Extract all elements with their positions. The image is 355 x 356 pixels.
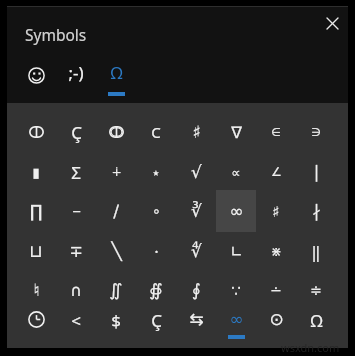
- button[interactable]: Symbol category: [136, 302, 176, 347]
- staticText: Ω: [110, 61, 123, 84]
- button[interactable]: Insert symbol: [176, 151, 216, 193]
- staticText: ▮: [32, 165, 40, 180]
- staticText: Σ: [71, 161, 81, 184]
- button[interactable]: Insert symbol: [56, 190, 96, 232]
- button[interactable]: Insert symbol: [136, 151, 176, 193]
- staticText: ∯: [149, 280, 163, 300]
- staticText: −: [72, 201, 81, 221]
- staticText: ∏: [30, 201, 43, 221]
- button[interactable]: Insert symbol: [256, 190, 296, 232]
- staticText: ⋇: [271, 244, 282, 259]
- staticText: ∞: [229, 309, 244, 329]
- button[interactable]: Recently used: [16, 302, 56, 347]
- staticText: ∝: [231, 165, 241, 180]
- staticText: ♮: [33, 280, 40, 300]
- staticText: ∋: [311, 126, 321, 139]
- staticText: ∮: [192, 280, 201, 300]
- button[interactable]: Insert symbol: [176, 190, 216, 232]
- staticText: ∇: [231, 123, 242, 142]
- staticText: Ç: [151, 309, 162, 332]
- button[interactable]: Insert symbol: [16, 269, 56, 311]
- button[interactable]: Symbol category: [216, 302, 256, 347]
- button[interactable]: Symbol category: [96, 302, 136, 347]
- button[interactable]: Insert symbol: [136, 230, 176, 272]
- button[interactable]: Insert symbol: [296, 190, 336, 232]
- staticText: ⇆: [189, 309, 204, 329]
- staticText: ⊔: [29, 241, 43, 261]
- button[interactable]: Insert symbol: [256, 151, 296, 193]
- button[interactable]: Insert symbol: [96, 230, 136, 272]
- staticText: ∈: [271, 126, 281, 139]
- staticText: Symbols: [25, 24, 87, 45]
- button[interactable]: Insert symbol: [56, 269, 96, 311]
- button[interactable]: Insert symbol: [56, 151, 96, 193]
- staticText: $: [111, 309, 121, 332]
- button[interactable]: Insert symbol: [176, 230, 216, 272]
- staticText: ‖: [311, 240, 321, 263]
- button[interactable]: Insert symbol: [16, 230, 56, 272]
- button[interactable]: Insert symbol: [256, 111, 296, 153]
- staticText: ∛: [191, 201, 202, 221]
- button[interactable]: Close: [314, 7, 350, 39]
- button[interactable]: Insert symbol: [16, 151, 56, 193]
- button[interactable]: Insert symbol: [216, 151, 256, 193]
- button[interactable]: Insert symbol: [16, 190, 56, 232]
- button[interactable]: Insert symbol: [16, 111, 56, 153]
- staticText: ╲: [111, 241, 122, 261]
- staticText: ;-): [68, 61, 84, 84]
- button[interactable]: Insert symbol: [136, 190, 176, 232]
- button[interactable]: Insert symbol: [296, 230, 336, 272]
- button[interactable]: Insert symbol: [216, 230, 256, 272]
- staticText: ∜: [191, 241, 202, 261]
- button[interactable]: Insert symbol: [96, 111, 136, 153]
- staticText: ∓: [69, 242, 83, 261]
- button[interactable]: Symbol category: [256, 302, 296, 347]
- staticText: ∔: [111, 165, 122, 179]
- staticText: ∟: [230, 243, 243, 260]
- button[interactable]: Insert symbol: [216, 190, 256, 232]
- button[interactable]: Insert symbol: [96, 151, 136, 193]
- button[interactable]: Insert symbol: [176, 111, 216, 153]
- staticText: ·: [154, 240, 159, 263]
- button[interactable]: Insert symbol: [256, 269, 296, 311]
- staticText: ∞: [229, 201, 244, 221]
- button[interactable]: Symbol category: [56, 302, 96, 347]
- staticText: Ç: [71, 121, 82, 144]
- staticText: ∠: [271, 165, 282, 179]
- staticText: ∸: [270, 282, 282, 298]
- button[interactable]: Insert symbol: [256, 230, 296, 272]
- staticText: ⊙: [269, 309, 284, 329]
- button[interactable]: ;-): [56, 55, 96, 97]
- button[interactable]: Insert symbol: [136, 111, 176, 153]
- button[interactable]: Symbol category: [176, 302, 216, 347]
- button[interactable]: Insert symbol: [136, 269, 176, 311]
- staticText: ∬: [109, 280, 123, 300]
- button[interactable]: Insert symbol: [56, 111, 96, 153]
- button[interactable]: Insert symbol: [176, 269, 216, 311]
- button[interactable]: Symbol category: [296, 302, 336, 347]
- staticText: ≑: [310, 282, 322, 298]
- staticText: ♯: [272, 203, 280, 220]
- button[interactable]: Insert symbol: [216, 111, 256, 153]
- staticText: ∩: [70, 281, 82, 300]
- button[interactable]: Insert symbol: [56, 230, 96, 272]
- button[interactable]: Emoticons: [16, 55, 56, 95]
- button[interactable]: Insert symbol: [216, 269, 256, 311]
- button[interactable]: Ω: [96, 55, 136, 97]
- staticText: wsxdn.com: [281, 340, 340, 355]
- staticText: ∕: [113, 201, 119, 221]
- button[interactable]: Insert symbol: [296, 269, 336, 311]
- button[interactable]: Insert symbol: [96, 269, 136, 311]
- staticText: C: [151, 122, 161, 142]
- staticText: ∤: [312, 201, 321, 221]
- staticText: √: [191, 162, 202, 182]
- button[interactable]: Insert symbol: [296, 111, 336, 153]
- staticText: ∣: [312, 162, 321, 182]
- staticText: ♯: [192, 122, 201, 142]
- button[interactable]: Insert symbol: [96, 190, 136, 232]
- staticText: Ω: [310, 309, 323, 332]
- staticText: <: [71, 309, 81, 332]
- staticText: ⋆: [151, 164, 161, 181]
- staticText: ∘: [152, 203, 161, 219]
- button[interactable]: Insert symbol: [296, 151, 336, 193]
